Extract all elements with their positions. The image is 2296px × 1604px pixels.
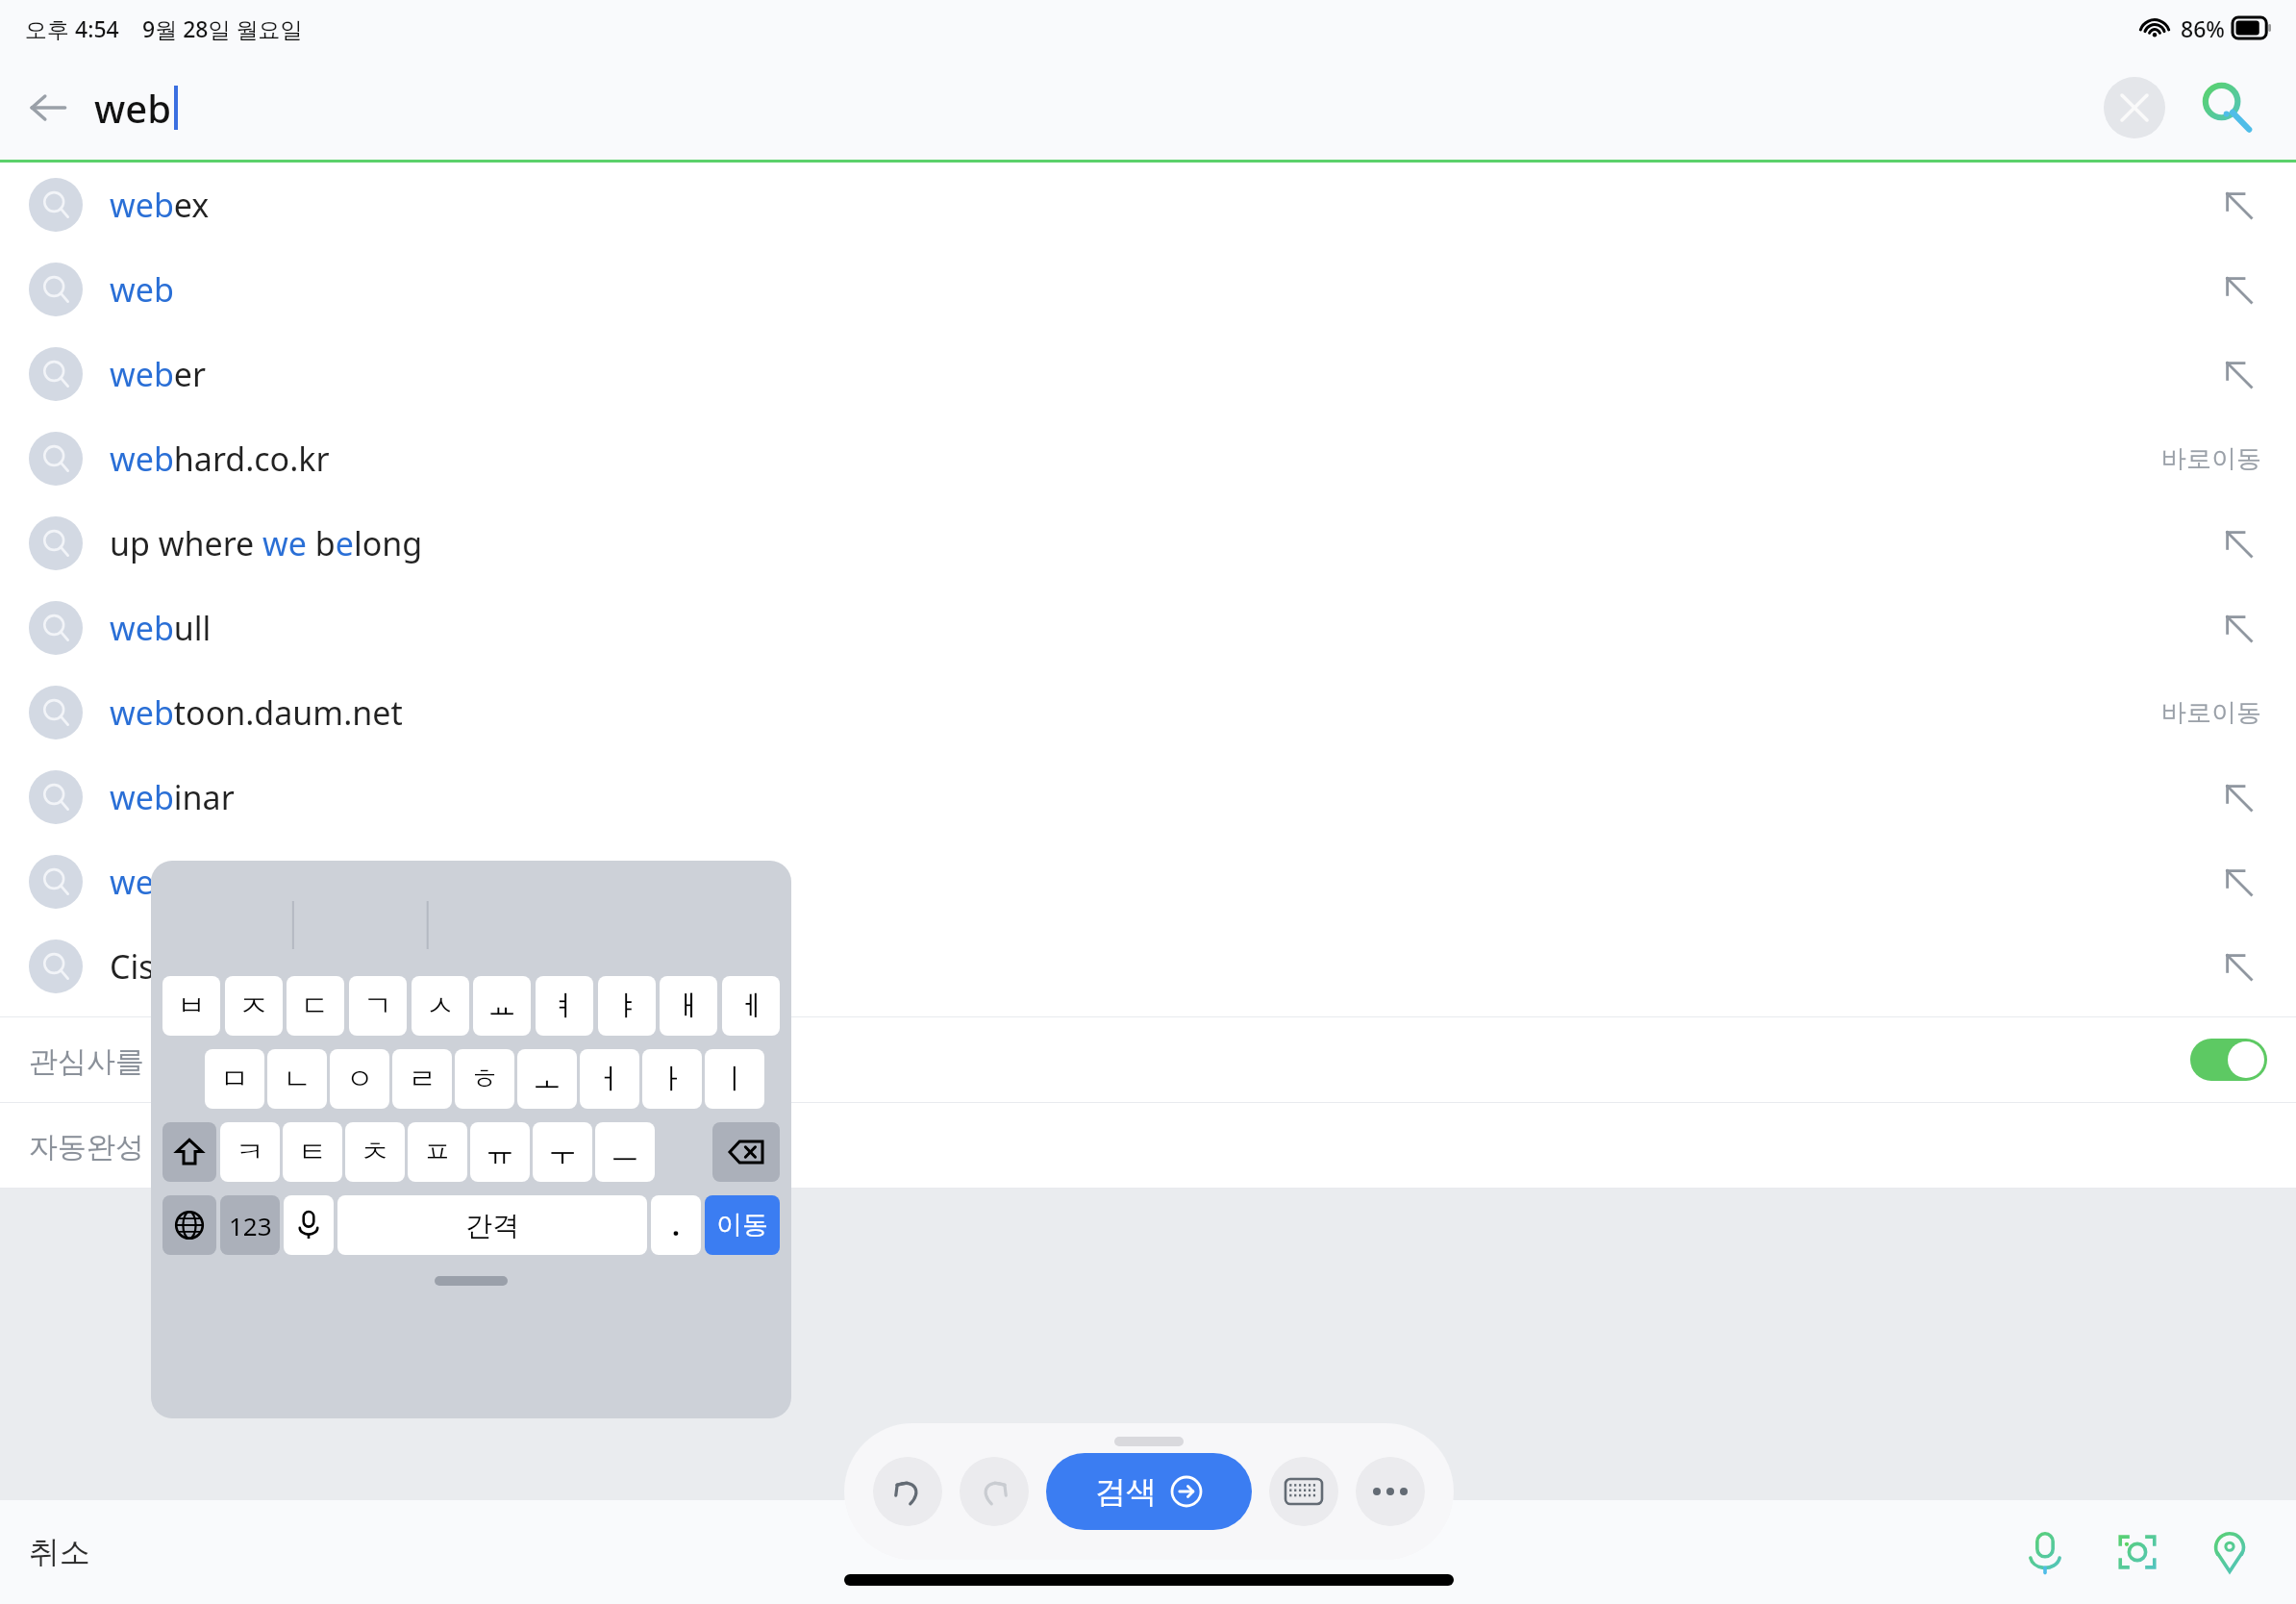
button[interactable]: ㅊ: [345, 1122, 405, 1182]
button[interactable]: ㅍ: [408, 1122, 467, 1182]
staticText: ㄱ: [363, 988, 392, 1024]
staticText: up where we belong: [110, 521, 423, 565]
button[interactable]: webster: [0, 840, 2296, 924]
staticText: ㅠ: [486, 1134, 514, 1170]
button[interactable]: ㅂ: [162, 976, 220, 1036]
button[interactable]: ㅌ: [283, 1122, 342, 1182]
button[interactable]: ㅗ: [517, 1049, 577, 1109]
button[interactable]: ㄴ: [267, 1049, 327, 1109]
button[interactable]: Toggle on: [2190, 1039, 2267, 1081]
staticText: 취소: [29, 1533, 90, 1571]
button[interactable]: ㅣ: [705, 1049, 764, 1109]
button[interactable]: Back: [13, 73, 83, 142]
button[interactable]: ㅏ: [642, 1049, 702, 1109]
button[interactable]: Insert: [2215, 266, 2261, 313]
button[interactable]: ㅓ: [580, 1049, 639, 1109]
button[interactable]: Insert: [2215, 351, 2261, 397]
button[interactable]: ㄹ: [392, 1049, 452, 1109]
button[interactable]: ㄱ: [349, 976, 407, 1036]
staticText: ㅈ: [239, 988, 268, 1024]
button[interactable]: Undo: [873, 1457, 942, 1526]
staticText: ㅗ: [533, 1061, 562, 1097]
button[interactable]: Insert: [2215, 859, 2261, 905]
button[interactable]: Shift: [162, 1122, 216, 1182]
button[interactable]: Backspace: [712, 1122, 780, 1182]
button[interactable]: web: [0, 247, 2296, 332]
button[interactable]: ㅛ: [473, 976, 531, 1036]
button[interactable]: webhard.co.kr: [0, 416, 2296, 501]
staticText: 이동: [716, 1209, 768, 1241]
button[interactable]: ㅋ: [220, 1122, 280, 1182]
staticText: ㅜ: [548, 1134, 577, 1170]
button[interactable]: Voice input: [284, 1195, 334, 1255]
button[interactable]: Redo: [960, 1457, 1029, 1526]
button[interactable]: ㅠ: [470, 1122, 530, 1182]
button[interactable]: 관심사를 반영한 검색어 추천: [0, 1017, 2296, 1102]
staticText: webhard.co.kr: [110, 437, 330, 481]
button[interactable]: Search: [2192, 73, 2261, 142]
button[interactable]: ㅅ: [412, 976, 469, 1036]
button[interactable]: ㄷ: [287, 976, 344, 1036]
button[interactable]: Insert: [2215, 774, 2261, 820]
staticText: ㅋ: [236, 1134, 264, 1170]
button[interactable]: ㅕ: [536, 976, 593, 1036]
staticText: ㅑ: [612, 988, 641, 1024]
staticText: 오후 4:54: [25, 13, 119, 43]
button[interactable]: Cisco Webex: [0, 924, 2296, 1009]
button[interactable]: ㅜ: [533, 1122, 592, 1182]
button[interactable]: ㅈ: [225, 976, 283, 1036]
staticText: ㅣ: [720, 1061, 749, 1097]
button[interactable]: 검색: [1046, 1453, 1252, 1530]
button[interactable]: Keyboard: [1269, 1457, 1338, 1526]
staticText: 바로이동: [2161, 443, 2261, 475]
staticText: 관심사를 반영한 검색어 추천: [29, 1040, 398, 1080]
button[interactable]: Language: [162, 1195, 216, 1255]
button[interactable]: More: [1356, 1457, 1425, 1526]
button[interactable]: webull: [0, 586, 2296, 670]
staticText: ㅌ: [298, 1134, 327, 1170]
button[interactable]: Voice: [2015, 1522, 2075, 1582]
staticText: ㅇ: [345, 1061, 374, 1097]
button[interactable]: ㅔ: [722, 976, 780, 1036]
button[interactable]: Insert: [2215, 182, 2261, 228]
button[interactable]: webinar: [0, 755, 2296, 840]
button[interactable]: ㅇ: [330, 1049, 389, 1109]
staticText: 간격: [465, 1209, 519, 1242]
button[interactable]: 간격: [337, 1195, 647, 1255]
button[interactable]: 이동: [705, 1195, 780, 1255]
button[interactable]: webex: [0, 163, 2296, 247]
button[interactable]: up where we belong: [0, 501, 2296, 586]
staticText: ㅡ: [611, 1134, 639, 1170]
button[interactable]: ㅎ: [455, 1049, 514, 1109]
staticText: 검색: [1095, 1472, 1157, 1511]
button[interactable]: 취소: [21, 1525, 98, 1579]
button[interactable]: ㅑ: [598, 976, 656, 1036]
button[interactable]: webtoon.daum.net: [0, 670, 2296, 755]
staticText: 86%: [2181, 13, 2225, 43]
button[interactable]: ㅁ: [205, 1049, 264, 1109]
button[interactable]: ㅐ: [660, 976, 717, 1036]
staticText: 바로이동: [2161, 697, 2261, 729]
button[interactable]: weber: [0, 332, 2296, 416]
staticText: ㅍ: [423, 1134, 452, 1170]
button[interactable]: .: [651, 1195, 701, 1255]
button[interactable]: Lens: [2108, 1522, 2167, 1582]
button[interactable]: Insert: [2215, 943, 2261, 990]
staticText: ㅐ: [674, 988, 703, 1024]
button[interactable]: ㅡ: [595, 1122, 655, 1182]
staticText: ㅛ: [487, 988, 516, 1024]
button[interactable]: Insert: [2215, 605, 2261, 651]
staticText: web: [110, 267, 174, 312]
staticText: .: [672, 1207, 680, 1243]
staticText: webster: [110, 860, 234, 904]
staticText: ㅎ: [470, 1061, 499, 1097]
button[interactable]: Clear: [2104, 77, 2165, 138]
button[interactable]: Insert: [2215, 520, 2261, 566]
button[interactable]: 123: [220, 1195, 280, 1255]
button[interactable]: Place: [2200, 1522, 2259, 1582]
staticText: ㅓ: [595, 1061, 624, 1097]
staticText: weber: [110, 352, 207, 396]
staticText: ㅁ: [220, 1061, 249, 1097]
button[interactable]: 자동완성 끄기: [0, 1103, 2296, 1188]
staticText: web: [94, 82, 172, 134]
